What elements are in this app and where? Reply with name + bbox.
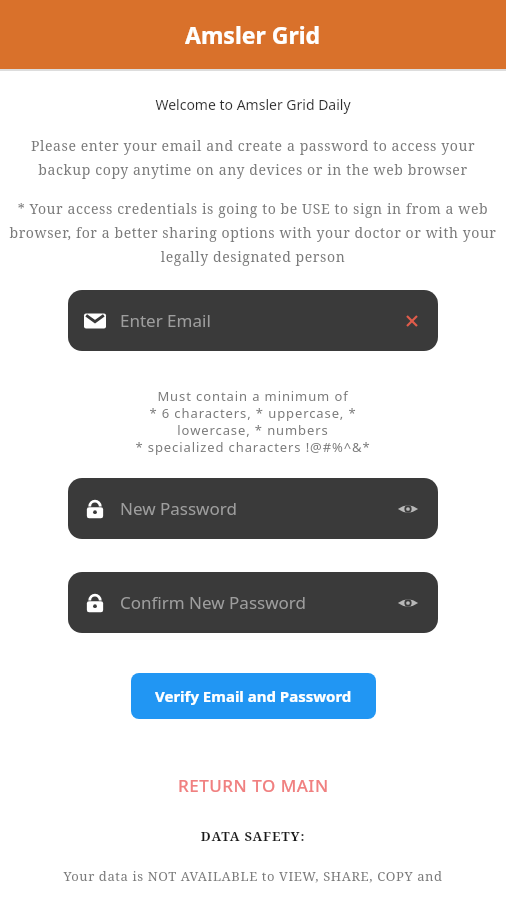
staticText: Confirm New Password [120, 591, 306, 614]
staticText: DATA SAFETY: [0, 827, 506, 845]
staticText: New Password [120, 497, 237, 520]
staticText: RETURN TO MAIN [178, 774, 329, 797]
staticText: * Your access credentials is going to be… [6, 199, 500, 266]
button[interactable]: Show password [396, 591, 420, 615]
staticText: Must contain a minimum of * 6 characters… [0, 387, 506, 456]
button[interactable]: Verify Email and Password [131, 673, 376, 719]
button[interactable]: RETURN TO MAIN [0, 774, 506, 797]
staticText: Verify Email and Password [155, 686, 352, 706]
staticText: Your data is NOT AVAILABLE to VIEW, SHAR… [10, 867, 496, 885]
button[interactable]: Show password [396, 497, 420, 521]
button[interactable]: Confirm New Password [68, 572, 438, 633]
staticText: Amsler Grid [185, 19, 321, 50]
staticText: Welcome to Amsler Grid Daily [0, 95, 506, 114]
button[interactable]: Clear email [402, 311, 422, 331]
button[interactable]: New Password [68, 478, 438, 539]
button[interactable]: Enter Email [68, 290, 438, 351]
staticText: Enter Email [120, 309, 211, 332]
staticText: Please enter your email and create a pas… [8, 136, 498, 179]
